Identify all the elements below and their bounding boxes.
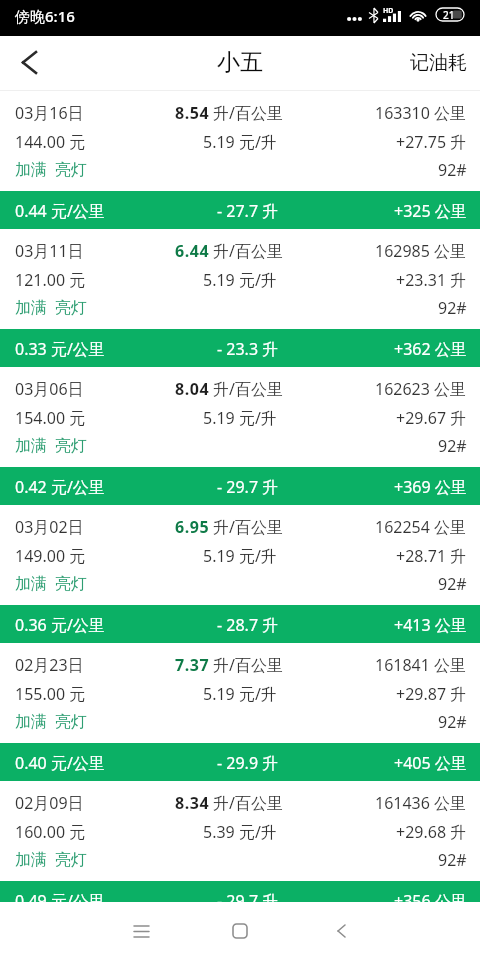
staticText: 亮灯 — [55, 850, 87, 870]
button[interactable]: 03月16日 — [0, 91, 480, 191]
button[interactable]: 02月23日 — [0, 643, 480, 743]
staticText: 5.19 元/升 — [203, 683, 277, 705]
staticText: 92# — [438, 159, 467, 181]
staticText: 21 — [443, 8, 455, 21]
staticText: +29.67 升 — [396, 407, 467, 429]
staticText: 记油耗 — [410, 51, 467, 75]
button[interactable]: 0.40 元/公里 — [0, 743, 480, 781]
staticText: 8.54 — [175, 102, 210, 124]
staticText: 亮灯 — [55, 574, 87, 594]
staticText: - 27.7 升 — [217, 200, 279, 222]
staticText: +325 公里 — [394, 200, 467, 222]
staticText: +27.75 升 — [396, 131, 467, 153]
staticText: HD — [383, 6, 394, 16]
staticText: 0.36 元/公里 — [15, 614, 105, 636]
staticText: 92# — [438, 849, 467, 871]
staticText: 升/百公里 — [213, 654, 283, 676]
staticText: +362 公里 — [394, 338, 467, 360]
staticText: - 28.7 升 — [217, 614, 279, 636]
staticText: 8.04 — [175, 378, 210, 400]
button[interactable]: 0.49 元/公里 — [0, 881, 480, 902]
staticText: +28.71 升 — [396, 545, 467, 567]
staticText: 5.19 元/升 — [203, 545, 277, 567]
staticText: 92# — [438, 297, 467, 319]
staticText: 加满 — [15, 436, 47, 456]
staticText: 163310 公里 — [375, 102, 467, 124]
staticText: 121.00 元 — [15, 269, 86, 291]
staticText: +29.87 升 — [396, 683, 467, 705]
staticText: 0.44 元/公里 — [15, 200, 105, 222]
staticText: - 29.7 升 — [217, 476, 279, 498]
staticText: 5.39 元/升 — [203, 821, 277, 843]
staticText: - 29.7 升 — [217, 890, 279, 902]
staticText: +23.31 升 — [396, 269, 467, 291]
staticText: 加满 — [15, 850, 47, 870]
staticText: 0.33 元/公里 — [15, 338, 105, 360]
button[interactable]: Back — [0, 36, 56, 91]
staticText: 154.00 元 — [15, 407, 86, 429]
staticText: 155.00 元 — [15, 683, 86, 705]
staticText: 149.00 元 — [15, 545, 86, 567]
staticText: 加满 — [15, 712, 47, 732]
staticText: 162254 公里 — [375, 516, 467, 538]
button[interactable]: 记油耗 — [410, 36, 467, 91]
staticText: 傍晚6:16 — [15, 6, 75, 26]
staticText: 亮灯 — [55, 712, 87, 732]
staticText: 161841 公里 — [375, 654, 467, 676]
staticText: 升/百公里 — [213, 378, 283, 400]
staticText: 亮灯 — [55, 160, 87, 180]
staticText: 03月06日 — [15, 378, 84, 400]
button[interactable]: 0.42 元/公里 — [0, 467, 480, 505]
staticText: - 23.3 升 — [217, 338, 279, 360]
staticText: 162623 公里 — [375, 378, 467, 400]
staticText: 亮灯 — [55, 436, 87, 456]
staticText: 162985 公里 — [375, 240, 467, 262]
staticText: 0.42 元/公里 — [15, 476, 105, 498]
staticText: - 29.9 升 — [217, 752, 279, 774]
staticText: +356 公里 — [394, 890, 467, 902]
staticText: 升/百公里 — [213, 102, 283, 124]
button[interactable]: 03月11日 — [0, 229, 480, 329]
staticText: 亮灯 — [55, 298, 87, 318]
staticText: 92# — [438, 573, 467, 595]
staticText: +29.68 升 — [396, 821, 467, 843]
button[interactable]: 0.44 元/公里 — [0, 191, 480, 229]
staticText: +405 公里 — [394, 752, 467, 774]
staticText: +369 公里 — [394, 476, 467, 498]
staticText: 144.00 元 — [15, 131, 86, 153]
staticText: 6.95 — [175, 516, 210, 538]
staticText: 升/百公里 — [213, 240, 283, 262]
staticText: 02月23日 — [15, 654, 84, 676]
button[interactable]: Home — [190, 902, 290, 960]
button[interactable]: Back — [290, 902, 390, 960]
staticText: 加满 — [15, 160, 47, 180]
staticText: 03月02日 — [15, 516, 84, 538]
staticText: 160.00 元 — [15, 821, 86, 843]
staticText: 小五 — [217, 48, 263, 77]
staticText: 5.19 元/升 — [203, 131, 277, 153]
staticText: 92# — [438, 435, 467, 457]
button[interactable]: 0.36 元/公里 — [0, 605, 480, 643]
button[interactable]: 0.33 元/公里 — [0, 329, 480, 367]
staticText: 0.49 元/公里 — [15, 890, 105, 902]
button[interactable]: 03月06日 — [0, 367, 480, 467]
staticText: 161436 公里 — [375, 792, 467, 814]
staticText: 7.37 — [175, 654, 210, 676]
staticText: 升/百公里 — [213, 792, 283, 814]
staticText: 8.34 — [175, 792, 210, 814]
staticText: 加满 — [15, 298, 47, 318]
staticText: 03月11日 — [15, 240, 84, 262]
button[interactable]: 02月09日 — [0, 781, 480, 881]
button[interactable]: Recent apps — [91, 902, 191, 960]
button[interactable]: 03月02日 — [0, 505, 480, 605]
staticText: 升/百公里 — [213, 516, 283, 538]
staticText: 02月09日 — [15, 792, 84, 814]
staticText: 5.19 元/升 — [203, 407, 277, 429]
staticText: 92# — [438, 711, 467, 733]
staticText: 03月16日 — [15, 102, 84, 124]
staticText: 5.19 元/升 — [203, 269, 277, 291]
staticText: 加满 — [15, 574, 47, 594]
staticText: +413 公里 — [394, 614, 467, 636]
staticText: 0.40 元/公里 — [15, 752, 105, 774]
staticText: 6.44 — [175, 240, 210, 262]
